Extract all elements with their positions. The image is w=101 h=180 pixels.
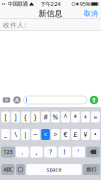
staticText: 收件人: — [3, 21, 26, 29]
staticText: ~ — [33, 130, 37, 139]
button[interactable]: Send — [89, 95, 98, 104]
staticText: _ — [4, 130, 7, 139]
button[interactable]: ] — [11, 111, 20, 122]
button[interactable]: | — [21, 129, 30, 140]
staticText: # — [43, 113, 47, 121]
staticText: ] — [14, 113, 16, 121]
staticText: | — [23, 130, 27, 139]
button[interactable]: 123 — [1, 146, 15, 157]
button[interactable]: • — [91, 129, 100, 140]
staticText: • — [94, 130, 97, 139]
button[interactable]: \ — [11, 129, 20, 140]
staticText: € — [63, 130, 67, 139]
button[interactable]: Camera — [2, 96, 10, 104]
button[interactable]: _ — [1, 129, 10, 140]
staticText: 新信息 — [38, 9, 62, 18]
button[interactable]: 取消 — [81, 8, 101, 19]
button[interactable]: ¥ — [81, 129, 90, 140]
staticText: 取消 — [84, 9, 98, 18]
button[interactable]: £ — [71, 129, 80, 140]
button[interactable]: { — [21, 111, 30, 122]
button[interactable]: ' — [72, 146, 85, 157]
button[interactable]: > — [51, 129, 60, 140]
button[interactable]: 换行 — [83, 164, 100, 175]
button[interactable]: # — [41, 111, 50, 122]
staticText: % — [52, 113, 58, 121]
staticText: A — [15, 96, 19, 104]
staticText: ABC — [3, 166, 12, 173]
button[interactable]: ^ — [61, 111, 70, 122]
staticText: = — [93, 113, 97, 121]
button[interactable]: Delete — [86, 146, 100, 157]
staticText: ? — [49, 148, 52, 156]
staticText: > — [53, 130, 57, 139]
button[interactable]: . — [16, 146, 29, 157]
button[interactable]: % — [51, 111, 60, 122]
button[interactable]: = — [91, 111, 100, 122]
button[interactable]: ! — [58, 146, 71, 157]
button[interactable]: + — [81, 111, 90, 122]
button[interactable]: € — [61, 129, 70, 140]
staticText: ^ — [63, 113, 67, 121]
staticText: * — [73, 113, 77, 121]
staticText: 换行 — [86, 166, 96, 173]
staticText: . — [21, 148, 23, 156]
button[interactable]: space — [26, 164, 81, 175]
button[interactable]: * — [71, 111, 80, 122]
staticText: space — [46, 166, 61, 173]
button[interactable]: Apps — [13, 96, 21, 104]
staticText: { — [24, 113, 27, 121]
button[interactable]: ? — [44, 146, 57, 157]
staticText: [ — [4, 113, 6, 121]
staticText: 下午2:24 — [40, 0, 60, 8]
button[interactable]: < — [41, 129, 50, 140]
button[interactable]: ~ — [31, 129, 40, 140]
staticText: 95% — [80, 0, 90, 8]
staticText: £ — [73, 130, 77, 139]
staticText: \ — [14, 130, 16, 139]
staticText: ! — [64, 148, 66, 156]
staticText: 中国联通 — [8, 1, 28, 7]
staticText: < — [43, 130, 47, 139]
button[interactable]: , — [30, 146, 43, 157]
staticText: ' — [78, 148, 80, 156]
button[interactable]: Emoji — [16, 164, 25, 175]
staticText: , — [35, 148, 37, 156]
staticText: ¥ — [83, 130, 87, 139]
button[interactable]: ABC — [1, 164, 15, 175]
staticText: 123 — [3, 148, 12, 156]
button[interactable]: } — [31, 111, 40, 122]
staticText: + — [83, 113, 87, 121]
staticText: } — [34, 113, 37, 121]
button[interactable]: [ — [1, 111, 10, 122]
